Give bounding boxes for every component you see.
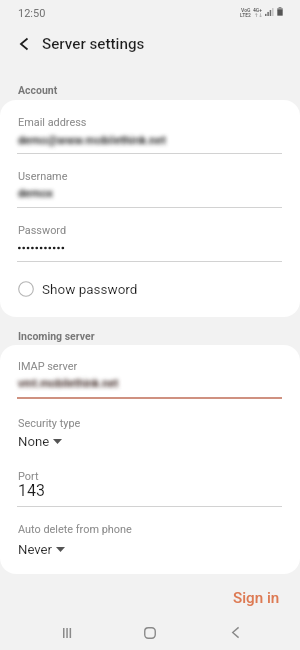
staticText: demox — [18, 186, 53, 199]
staticText: demox — [18, 186, 53, 199]
staticText: Server settings — [42, 35, 145, 53]
button[interactable]: Navigate up — [12, 32, 35, 55]
staticText: Auto delete from phone — [18, 523, 132, 536]
button[interactable] — [0, 211, 300, 261]
staticText: Sign in — [233, 589, 280, 607]
staticText: Account — [18, 84, 58, 96]
staticText: 143 — [18, 481, 45, 500]
staticText: 4G+ — [253, 7, 263, 13]
staticText: Password — [18, 224, 67, 237]
staticText: demo@www.mobilethink.net — [18, 133, 166, 146]
button[interactable] — [0, 157, 300, 207]
button[interactable] — [0, 510, 300, 560]
button[interactable] — [0, 104, 300, 154]
button[interactable]: Show password — [0, 266, 300, 311]
staticText: demo@www.mobilethink.net — [18, 133, 166, 146]
button[interactable] — [0, 457, 300, 505]
staticText: Username — [18, 170, 68, 183]
staticText: vmt.mobilethink.net — [18, 377, 119, 390]
staticText: ↑↓ — [254, 12, 263, 18]
staticText: vmt.mobilethink.net — [18, 377, 119, 390]
staticText: Show password — [42, 281, 138, 297]
staticText: LTE2 — [240, 12, 251, 18]
button[interactable]: Recent apps — [34, 615, 100, 650]
staticText: None — [18, 434, 50, 449]
staticText: Never — [18, 542, 53, 557]
button[interactable]: Sign in — [226, 582, 286, 614]
staticText: Security type — [18, 417, 81, 430]
button[interactable] — [0, 349, 300, 399]
staticText: VoG — [241, 7, 251, 13]
staticText: 12:50 — [18, 7, 46, 20]
staticText: Port — [18, 470, 39, 483]
button[interactable] — [0, 403, 300, 451]
staticText: Email address — [18, 116, 87, 129]
staticText: IMAP server — [18, 360, 78, 373]
staticText: Incoming server — [18, 330, 95, 342]
button[interactable]: Back — [202, 615, 268, 650]
button[interactable]: Home — [117, 615, 183, 650]
